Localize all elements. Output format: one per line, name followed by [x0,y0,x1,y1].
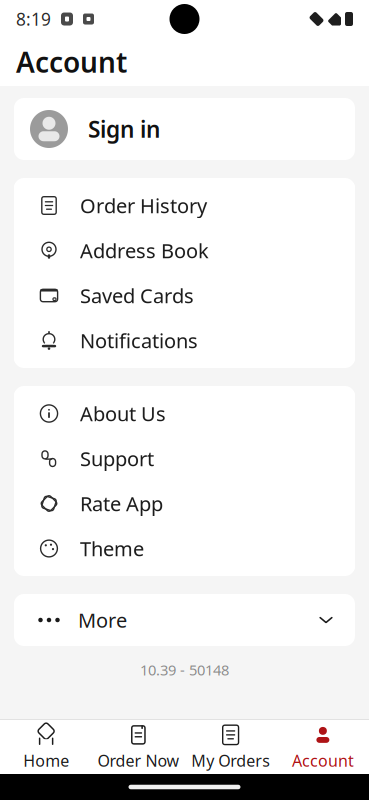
button[interactable]: Order Now [92,723,184,771]
staticText: My Orders [191,750,270,771]
staticText: Order History [80,192,207,219]
button[interactable]: Theme [14,526,355,571]
button[interactable]: About Us [14,391,355,436]
staticText: Theme [80,535,144,562]
button[interactable]: My Orders [184,723,277,771]
staticText: Address Book [80,237,209,264]
staticText: Support [80,445,154,472]
staticText: Notifications [80,327,198,354]
button[interactable]: Rate App [14,481,355,526]
staticText: Account [16,43,127,81]
staticText: More [78,607,127,633]
staticText: Sign in [88,114,160,144]
button[interactable]: Saved Cards [14,273,355,318]
staticText: About Us [80,400,166,427]
button[interactable]: Support [14,436,355,481]
staticText: Rate App [80,490,163,517]
button[interactable]: Notifications [14,318,355,363]
button[interactable]: Sign in [14,98,355,160]
staticText: Saved Cards [80,282,194,309]
staticText: 8:19 [16,7,51,30]
button[interactable]: Account [277,723,369,771]
staticText: 10.39 - 50148 [140,660,229,679]
staticText: Account [292,750,354,771]
button[interactable]: Address Book [14,228,355,273]
button[interactable]: Order History [14,183,355,228]
button[interactable]: More [14,594,355,646]
staticText: Home [23,750,69,771]
button[interactable]: Home [0,723,92,771]
staticText: Order Now [97,750,179,771]
